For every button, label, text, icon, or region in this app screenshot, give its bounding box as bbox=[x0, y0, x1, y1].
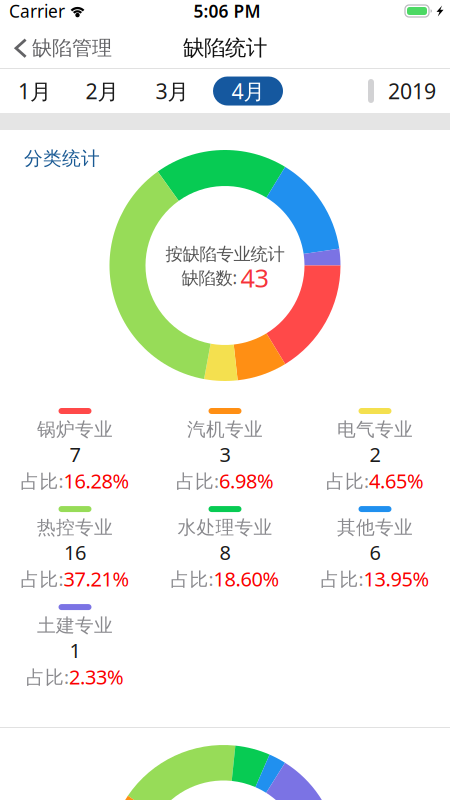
staticText: 占比: bbox=[326, 468, 369, 493]
button[interactable]: 其他专业 bbox=[300, 506, 450, 592]
staticText: 占比: bbox=[20, 566, 63, 591]
button[interactable]: 2月 bbox=[73, 74, 131, 108]
staticText: 3月 bbox=[155, 77, 188, 105]
staticText: 4月 bbox=[231, 77, 264, 105]
staticText: 1月 bbox=[18, 77, 51, 105]
button[interactable]: 水处理专业 bbox=[150, 506, 300, 592]
button[interactable]: 锅炉专业 bbox=[0, 408, 150, 494]
staticText: 占比: bbox=[20, 468, 63, 493]
staticText: 2.33% bbox=[69, 664, 124, 690]
staticText: 43 bbox=[240, 261, 268, 294]
staticText: 37.21% bbox=[63, 565, 129, 592]
staticText: 热控专业 bbox=[37, 516, 113, 539]
staticText: Carrier bbox=[9, 0, 65, 22]
staticText: 7 bbox=[69, 441, 80, 467]
staticText: 占比: bbox=[320, 566, 363, 591]
staticText: 5:06 PM bbox=[193, 0, 260, 22]
staticText: 电气专业 bbox=[337, 418, 413, 441]
staticText: 锅炉专业 bbox=[37, 418, 113, 441]
staticText: 占比: bbox=[176, 468, 219, 493]
staticText: 缺陷统计 bbox=[183, 35, 267, 61]
staticText: 1 bbox=[69, 637, 80, 664]
staticText: 土建专业 bbox=[37, 614, 113, 637]
staticText: 汽机专业 bbox=[187, 418, 263, 441]
staticText: 2 bbox=[369, 441, 380, 467]
staticText: 2019 bbox=[388, 77, 436, 105]
staticText: 6 bbox=[369, 539, 380, 566]
staticText: 按缺陷专业统计 bbox=[165, 243, 284, 265]
staticText: 18.60% bbox=[213, 565, 279, 592]
staticText: 占比: bbox=[170, 566, 213, 591]
button[interactable]: 汽机专业 bbox=[150, 408, 300, 494]
staticText: 8 bbox=[219, 539, 230, 566]
button[interactable]: 分类统计 bbox=[0, 130, 100, 170]
staticText: 水处理专业 bbox=[177, 516, 272, 539]
staticText: 分类统计 bbox=[24, 147, 100, 170]
button[interactable]: 电气专业 bbox=[300, 408, 450, 494]
staticText: 13.95% bbox=[363, 565, 429, 592]
button[interactable]: 3月 bbox=[143, 74, 201, 108]
staticText: 4.65% bbox=[369, 467, 424, 494]
staticText: 16 bbox=[64, 539, 86, 566]
staticText: 3 bbox=[219, 441, 230, 467]
button[interactable]: 1月 bbox=[5, 74, 63, 108]
staticText: 缺陷管理 bbox=[32, 36, 112, 60]
staticText: 16.28% bbox=[63, 467, 129, 494]
staticText: 6.98% bbox=[219, 467, 274, 494]
staticText: 其他专业 bbox=[337, 516, 413, 539]
staticText: 缺陷数: bbox=[181, 266, 237, 289]
staticText: 2月 bbox=[85, 77, 118, 105]
button[interactable]: 缺陷管理 bbox=[0, 28, 122, 68]
button[interactable]: 热控专业 bbox=[0, 506, 150, 592]
button[interactable]: 4月 bbox=[213, 76, 283, 105]
button[interactable]: 土建专业 bbox=[0, 604, 150, 690]
staticText: 占比: bbox=[26, 664, 69, 689]
